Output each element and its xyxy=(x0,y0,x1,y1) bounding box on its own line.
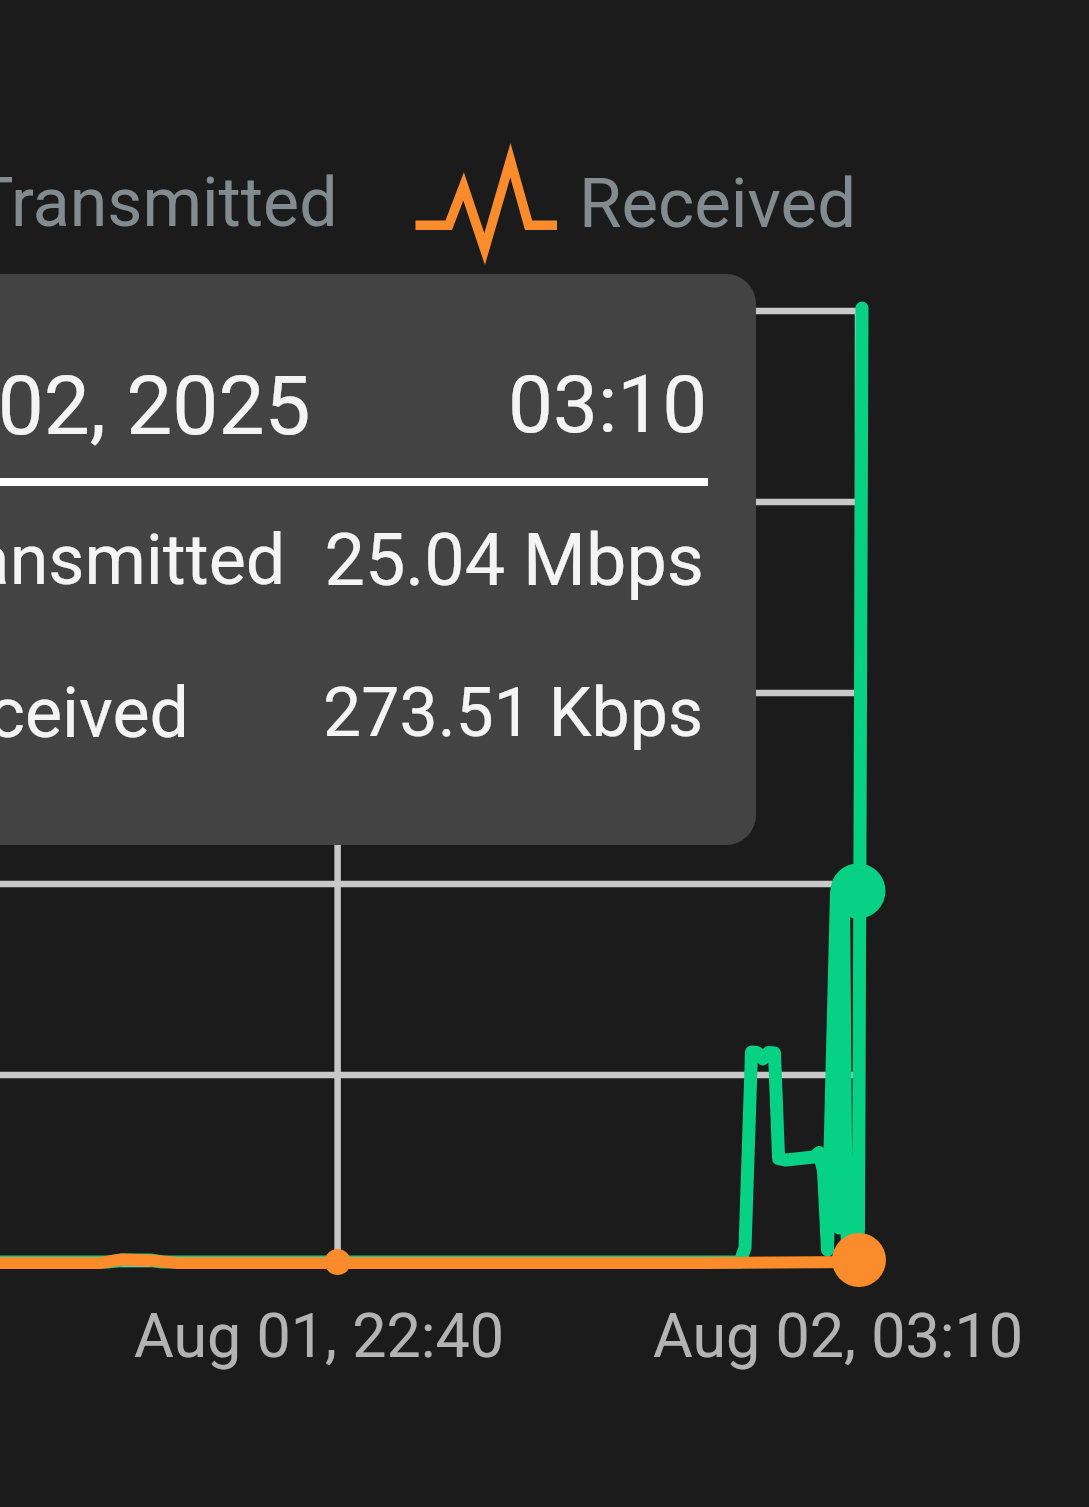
staticText: Transmitted xyxy=(0,519,286,601)
button[interactable]: Transmitted xyxy=(0,155,340,250)
staticText: 25.04 Mbps xyxy=(104,518,704,602)
other: Network activity xyxy=(410,145,564,260)
staticText: Aug 01, 22:40 xyxy=(134,1300,505,1371)
staticText: Aug 02, 2025 xyxy=(0,358,311,454)
staticText: Received xyxy=(0,672,190,754)
button[interactable]: Network speed chart xyxy=(0,0,1089,1507)
button[interactable] xyxy=(0,274,756,845)
staticText: 273.51 Kbps xyxy=(103,673,703,753)
staticText: Received xyxy=(579,163,857,244)
staticText: 03:10 xyxy=(508,358,708,452)
button[interactable]: Received xyxy=(560,155,870,250)
staticText: Aug 02, 03:10 xyxy=(653,1300,1024,1371)
staticText: Transmitted xyxy=(0,163,338,243)
